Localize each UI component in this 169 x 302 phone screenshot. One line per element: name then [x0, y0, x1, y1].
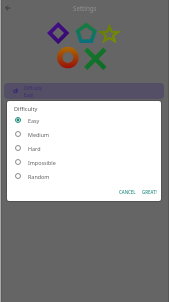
button[interactable]: Impossible — [7, 155, 161, 169]
staticText: Random — [28, 173, 50, 180]
staticText: Easy — [28, 117, 40, 124]
button[interactable]: Difficulty — [4, 83, 164, 99]
button[interactable]: CANCEL — [116, 187, 139, 197]
button[interactable]: Back — [0, 0, 16, 15]
staticText: Medium — [28, 131, 50, 138]
button[interactable]: Easy — [7, 113, 161, 127]
staticText: Settings — [73, 4, 97, 12]
button[interactable]: Hard — [7, 141, 161, 155]
staticText: Difficulty — [24, 85, 43, 91]
button[interactable]: GREAT! — [139, 187, 160, 197]
staticText: Hard — [28, 145, 41, 152]
staticText: Difficulty — [14, 105, 38, 113]
button[interactable]: Medium — [7, 127, 161, 141]
staticText: Impossible — [28, 159, 56, 166]
staticText: GREAT! — [142, 189, 157, 195]
staticText: Easy — [24, 92, 34, 98]
button[interactable]: Random — [7, 169, 161, 183]
staticText: CANCEL — [119, 189, 136, 195]
